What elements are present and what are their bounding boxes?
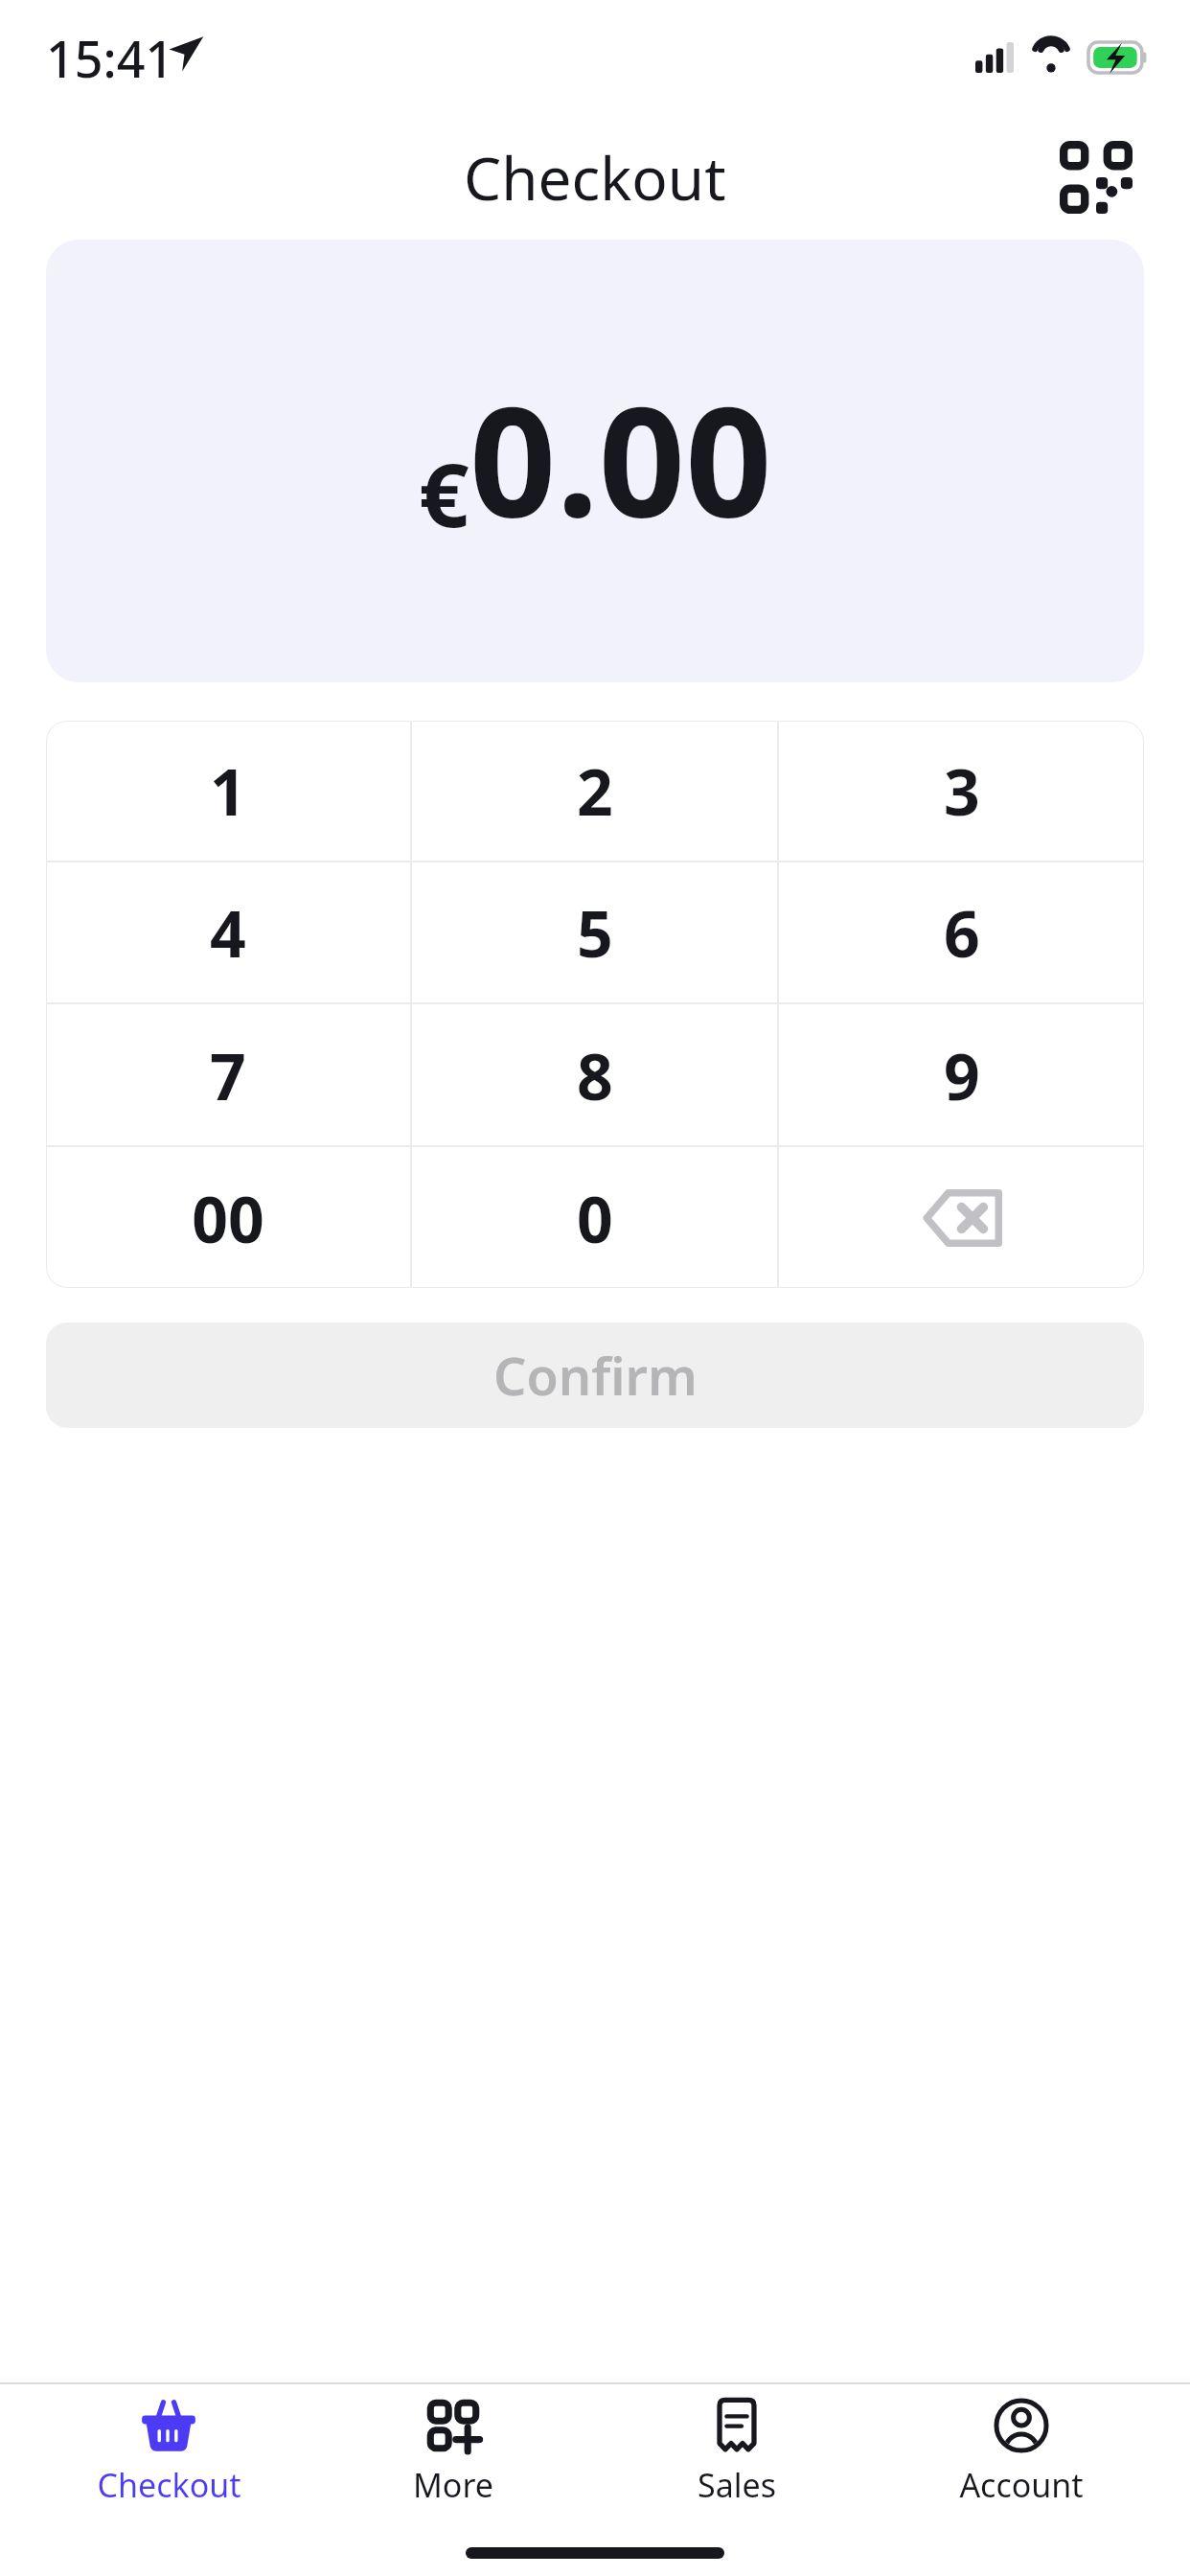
button[interactable]: 2 — [412, 721, 777, 861]
staticText: 00 — [192, 1175, 264, 1261]
staticText: 4 — [210, 889, 246, 976]
button[interactable]: 0 — [412, 1147, 777, 1288]
button[interactable]: 6 — [779, 862, 1144, 1002]
staticText: 0.00 — [469, 355, 772, 561]
staticText: 6 — [944, 889, 980, 976]
staticText: Account — [959, 2463, 1084, 2507]
button[interactable]: Sales — [622, 2396, 852, 2507]
staticText: 9 — [944, 1032, 980, 1118]
staticText: Sales — [698, 2463, 776, 2507]
staticText: More — [413, 2463, 493, 2507]
staticText: 1 — [210, 747, 246, 834]
staticText: Checkout — [464, 137, 726, 218]
button[interactable]: Checkout — [54, 2396, 284, 2507]
button[interactable]: 7 — [46, 1004, 410, 1145]
button[interactable]: 9 — [779, 1004, 1144, 1145]
staticText: 0 — [577, 1175, 613, 1261]
staticText: Confirm — [493, 1340, 698, 1411]
button[interactable]: 3 — [779, 721, 1144, 861]
button[interactable]: Confirm — [46, 1322, 1144, 1428]
staticText: 7 — [210, 1032, 246, 1118]
button[interactable]: Backspace — [779, 1147, 1144, 1288]
button[interactable]: 1 — [46, 721, 410, 861]
button[interactable]: Scan QR code — [1046, 127, 1146, 227]
staticText: 2 — [577, 747, 613, 834]
staticText: 3 — [944, 747, 980, 834]
staticText: Checkout — [97, 2463, 241, 2507]
staticText: 15:41 — [46, 24, 174, 92]
button[interactable]: 4 — [46, 862, 410, 1002]
button[interactable]: 5 — [412, 862, 777, 1002]
staticText: € — [419, 433, 469, 553]
staticText: 8 — [577, 1032, 613, 1118]
button[interactable]: 00 — [46, 1147, 410, 1288]
button[interactable]: More — [338, 2396, 568, 2507]
staticText: 5 — [577, 889, 613, 976]
button[interactable]: Account — [906, 2396, 1136, 2507]
button[interactable]: 8 — [412, 1004, 777, 1145]
